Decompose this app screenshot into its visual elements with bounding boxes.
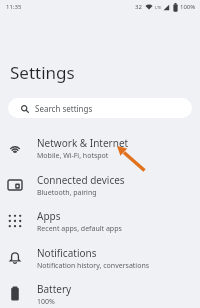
staticText: Bluetooth, pairing — [37, 188, 97, 198]
button[interactable]: Search settings — [8, 98, 192, 118]
staticText: Notification history, conversations — [37, 261, 150, 271]
staticText: Search settings — [35, 103, 93, 114]
staticText: Notifications — [37, 246, 97, 260]
staticText: Battery — [37, 282, 72, 296]
staticText: Settings — [10, 61, 75, 84]
staticText: 100% — [37, 297, 55, 307]
button[interactable]: Connected devices — [0, 167, 200, 203]
staticText: Mobile, Wi-Fi, hotspot — [37, 151, 109, 161]
staticText: 100% — [180, 3, 196, 11]
staticText: 32 — [135, 3, 142, 11]
staticText: LTE — [155, 5, 162, 10]
staticText: Connected devices — [37, 173, 125, 187]
button[interactable]: Notifications — [0, 240, 200, 276]
button[interactable]: Network & Internet — [0, 130, 200, 166]
button[interactable]: Apps — [0, 203, 200, 239]
button[interactable]: Battery — [0, 276, 200, 308]
staticText: Apps — [37, 209, 61, 223]
staticText: Recent apps, default apps — [37, 224, 122, 234]
staticText: Network & Internet — [37, 136, 129, 150]
staticText: 11:35 — [6, 3, 22, 11]
